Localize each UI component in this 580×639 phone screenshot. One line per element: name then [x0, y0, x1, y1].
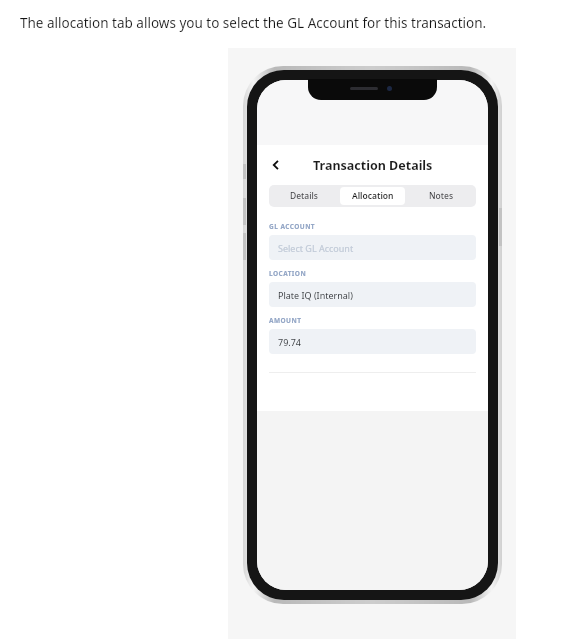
- staticText: Details: [290, 190, 318, 202]
- staticText: Notes: [429, 190, 454, 202]
- staticText: AMOUNT: [269, 316, 302, 325]
- staticText: GL ACCOUNT: [269, 222, 316, 231]
- staticText: Transaction Details: [313, 157, 433, 174]
- button[interactable]: Allocation: [340, 187, 405, 205]
- staticText: Plate IQ (Internal): [278, 289, 353, 301]
- button[interactable]: Select GL Account: [269, 235, 476, 260]
- staticText: The allocation tab allows you to select …: [20, 14, 487, 32]
- staticText: 79.74: [278, 336, 302, 348]
- button[interactable]: Details: [271, 187, 336, 205]
- button[interactable]: 79.74: [269, 329, 476, 354]
- button[interactable]: Back: [260, 149, 292, 181]
- staticText: LOCATION: [269, 269, 307, 278]
- button[interactable]: Plate IQ (Internal): [269, 282, 476, 307]
- staticText: Select GL Account: [278, 242, 354, 254]
- button[interactable]: Notes: [409, 187, 474, 205]
- staticText: Allocation: [352, 190, 394, 202]
